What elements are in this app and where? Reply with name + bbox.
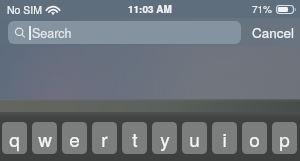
staticText: q	[9, 125, 20, 152]
button[interactable]: u	[182, 122, 207, 154]
staticText: 71%	[252, 2, 273, 16]
staticText: o	[249, 125, 260, 152]
button[interactable]: Search	[8, 21, 241, 44]
staticText: r	[101, 125, 108, 152]
staticText: p	[279, 125, 290, 152]
button[interactable]: r	[92, 122, 117, 154]
button[interactable]: i	[212, 122, 237, 154]
button[interactable]: w	[32, 122, 57, 154]
button[interactable]: o	[242, 122, 267, 154]
button[interactable]: e	[62, 122, 87, 154]
button[interactable]: p	[272, 122, 297, 154]
staticText: Cancel	[252, 23, 295, 42]
staticText: e	[69, 125, 80, 152]
button[interactable]: y	[152, 122, 177, 154]
staticText: Search	[32, 24, 72, 42]
staticText: w	[38, 125, 52, 152]
button[interactable]: t	[122, 122, 147, 154]
staticText: 11:03 AM	[128, 2, 172, 16]
staticText: t	[132, 125, 138, 152]
staticText: y	[160, 125, 170, 152]
staticText: i	[222, 125, 227, 152]
button[interactable]: q	[2, 122, 27, 154]
button[interactable]: Cancel	[246, 18, 300, 46]
staticText: u	[189, 125, 200, 152]
staticText: No SIM	[7, 2, 43, 17]
